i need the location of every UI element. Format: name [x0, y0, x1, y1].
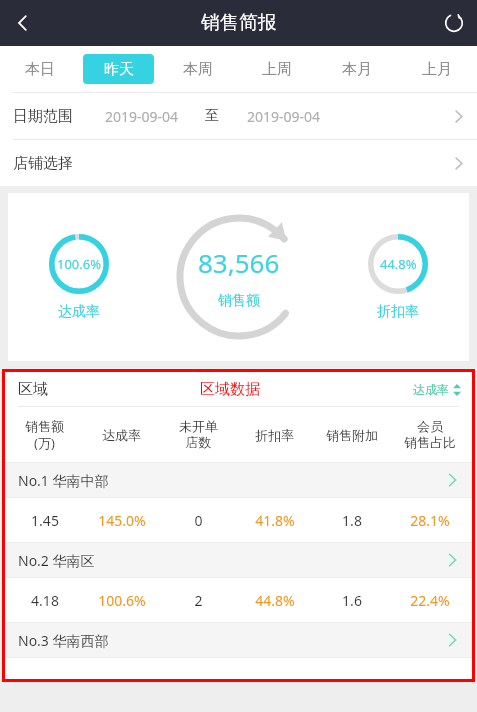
- staticText: 100.6%: [98, 591, 146, 610]
- button[interactable]: Back: [0, 0, 46, 46]
- staticText: 店铺选择: [13, 154, 73, 173]
- staticText: 0: [194, 511, 203, 530]
- button[interactable]: No.2 华南区: [5, 543, 472, 577]
- button[interactable]: 本日: [0, 46, 79, 92]
- staticText: 本月: [342, 60, 372, 79]
- staticText: 折扣率: [377, 303, 419, 321]
- staticText: 销售额 (万): [25, 418, 64, 451]
- button[interactable]: 上周: [237, 46, 317, 92]
- staticText: 83,566: [198, 245, 280, 280]
- staticText: 2: [194, 591, 203, 610]
- staticText: 上周: [262, 60, 292, 79]
- staticText: 本周: [183, 60, 213, 79]
- staticText: 销售额: [218, 292, 260, 310]
- staticText: No.1 华南中部: [18, 471, 109, 490]
- staticText: 100.6%: [57, 255, 102, 273]
- staticText: No.3 华南西部: [18, 631, 109, 650]
- staticText: 达成率: [413, 382, 449, 397]
- staticText: 1.6: [342, 591, 362, 610]
- staticText: 销售附加: [326, 427, 378, 443]
- button[interactable]: 店铺选择: [0, 140, 477, 186]
- button[interactable]: 4.18: [5, 578, 472, 622]
- button[interactable]: 本周: [158, 46, 237, 92]
- staticText: 22.4%: [410, 591, 450, 610]
- button[interactable]: 1.45: [5, 498, 472, 542]
- staticText: 折扣率: [255, 427, 294, 443]
- staticText: 41.8%: [255, 511, 295, 530]
- staticText: 昨天: [104, 60, 134, 79]
- staticText: 销售简报: [201, 11, 277, 35]
- staticText: 44.8%: [380, 255, 417, 273]
- staticText: 2019-09-04: [247, 107, 321, 126]
- button[interactable]: No.1 华南中部: [5, 463, 472, 497]
- button[interactable]: 昨天: [79, 46, 158, 92]
- button[interactable]: 达成率: [413, 382, 461, 397]
- staticText: 未开单 店数: [179, 418, 218, 451]
- staticText: 区域数据: [200, 380, 260, 399]
- staticText: 1.45: [31, 511, 59, 530]
- staticText: 28.1%: [410, 511, 450, 530]
- staticText: No.2 华南区: [18, 551, 95, 570]
- staticText: 至: [205, 107, 219, 125]
- staticText: 会员 销售占比: [404, 418, 456, 451]
- button[interactable]: Refresh: [431, 0, 477, 46]
- staticText: 本日: [25, 60, 55, 79]
- staticText: 达成率: [102, 427, 141, 443]
- staticText: 区域: [18, 380, 48, 399]
- staticText: 44.8%: [255, 591, 295, 610]
- staticText: 上月: [422, 60, 452, 79]
- button[interactable]: No.3 华南西部: [5, 623, 472, 657]
- button[interactable]: 本月: [317, 46, 397, 92]
- staticText: 1.8: [342, 511, 362, 530]
- staticText: 2019-09-04: [105, 107, 179, 126]
- button[interactable]: 日期范围: [0, 93, 477, 139]
- staticText: 达成率: [58, 303, 100, 321]
- staticText: 145.0%: [98, 511, 146, 530]
- button[interactable]: 上月: [397, 46, 477, 92]
- staticText: 日期范围: [13, 107, 73, 126]
- staticText: 4.18: [31, 591, 59, 610]
